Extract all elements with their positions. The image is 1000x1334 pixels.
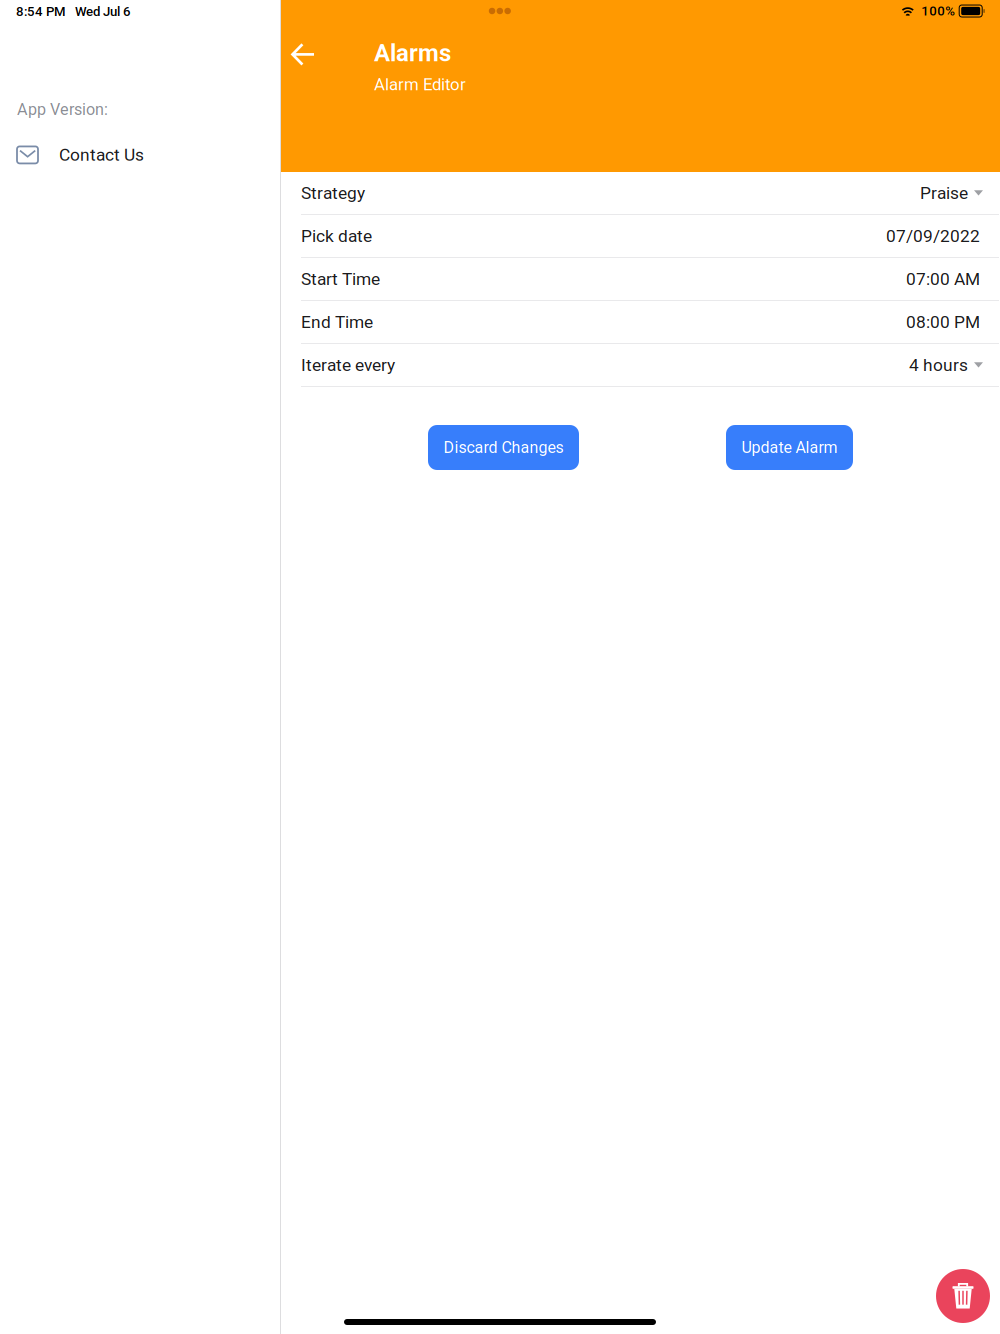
staticText: 100%: [921, 3, 955, 19]
button[interactable]: Back: [281, 39, 325, 83]
button[interactable]: Update Alarm: [726, 425, 853, 470]
staticText: Iterate every: [301, 355, 395, 375]
button[interactable]: Delete alarm: [936, 1269, 990, 1323]
staticText: Praise: [920, 183, 968, 203]
button[interactable]: Discard Changes: [428, 425, 579, 470]
button[interactable]: Pick date: [281, 215, 1000, 258]
staticText: 08:00 PM: [906, 312, 980, 332]
staticText: Update Alarm: [741, 438, 837, 457]
staticText: Strategy: [301, 183, 365, 203]
staticText: End Time: [301, 312, 373, 332]
button[interactable]: Start Time: [281, 258, 1000, 301]
button[interactable]: Strategy: [281, 172, 1000, 215]
staticText: Contact Us: [59, 145, 144, 165]
staticText: Wed Jul 6: [75, 4, 131, 19]
staticText: 8:54 PM: [16, 4, 66, 19]
button[interactable]: End Time: [281, 301, 1000, 344]
staticText: Alarms: [374, 39, 451, 67]
staticText: 07:00 AM: [906, 269, 980, 289]
staticText: 07/09/2022: [886, 226, 980, 246]
staticText: App Version:: [17, 100, 108, 119]
staticText: Pick date: [301, 226, 372, 246]
staticText: Start Time: [301, 269, 380, 289]
staticText: Discard Changes: [443, 438, 563, 457]
button[interactable]: Iterate every: [281, 344, 1000, 387]
staticText: Alarm Editor: [374, 75, 466, 94]
staticText: 4 hours: [909, 355, 968, 375]
button[interactable]: Contact Us: [0, 140, 280, 170]
